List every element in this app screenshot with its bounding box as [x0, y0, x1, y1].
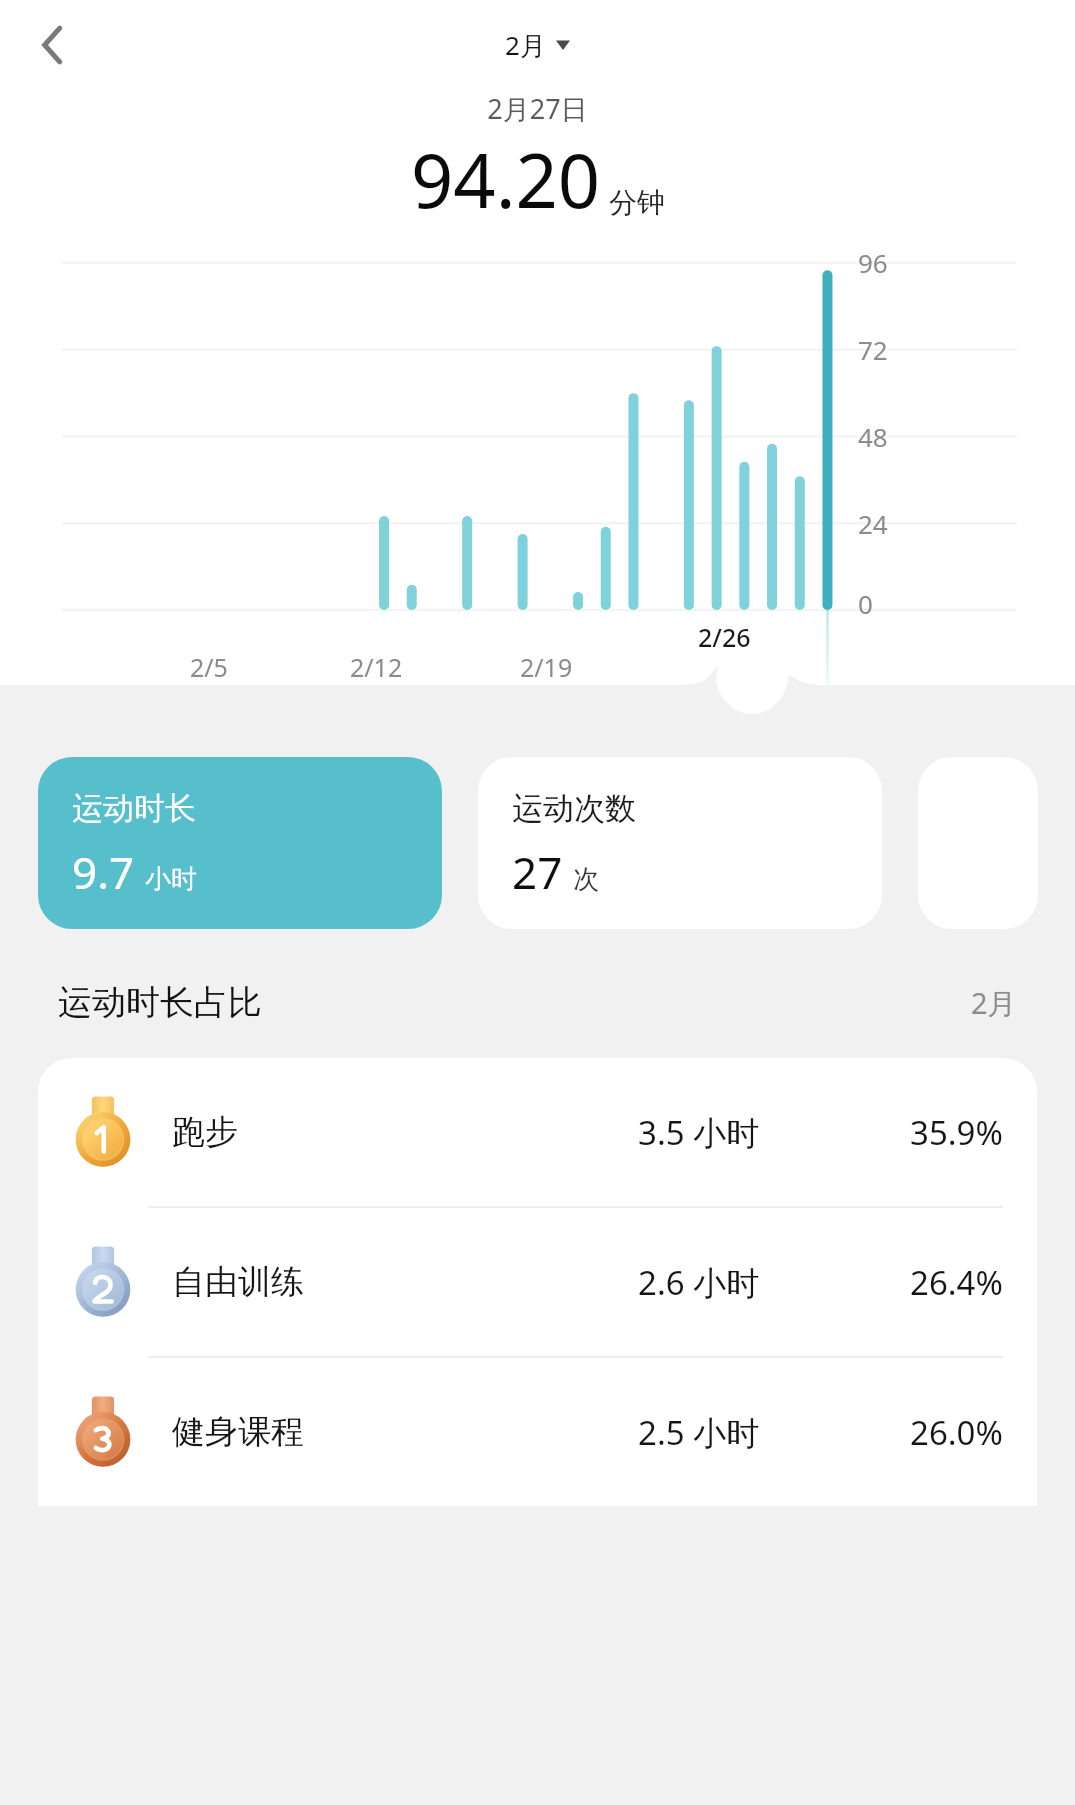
- button[interactable]: 健身课程: [38, 1358, 1037, 1506]
- staticText: 运动时长占比: [58, 981, 262, 1024]
- staticText: 96: [858, 245, 888, 280]
- staticText: 次: [573, 863, 599, 896]
- button[interactable]: Back: [22, 14, 84, 76]
- staticText: 运动时长: [72, 789, 196, 828]
- button[interactable]: 跑步: [38, 1058, 1037, 1206]
- staticText: 94.20: [411, 129, 601, 230]
- staticText: 2.5 小时: [638, 1410, 760, 1455]
- staticText: 35.9%: [910, 1110, 1003, 1155]
- staticText: 跑步: [172, 1111, 238, 1153]
- staticText: 26.0%: [910, 1410, 1003, 1455]
- staticText: 2.6 小时: [638, 1260, 760, 1305]
- staticText: 运动次数: [512, 789, 636, 828]
- staticText: 72: [858, 332, 888, 367]
- staticText: 分钟: [609, 185, 665, 220]
- staticText: 健身课程: [172, 1411, 304, 1453]
- staticText: 2/5: [190, 650, 228, 684]
- button[interactable]: 自由训练: [38, 1208, 1037, 1356]
- staticText: 2/12: [350, 650, 403, 684]
- staticText: 0: [858, 586, 873, 621]
- staticText: 小时: [145, 863, 197, 896]
- button[interactable]: 2月: [499, 21, 576, 69]
- staticText: 3.5 小时: [638, 1110, 760, 1155]
- staticText: 2月: [505, 27, 546, 63]
- staticText: 48: [858, 419, 888, 454]
- staticText: 26.4%: [910, 1260, 1003, 1305]
- staticText: 2/19: [520, 650, 573, 684]
- staticText: 2月27日: [0, 90, 1075, 127]
- button[interactable]: 运动时长: [38, 757, 442, 929]
- staticText: 9.7: [72, 842, 135, 902]
- staticText: 27: [512, 842, 563, 902]
- staticText: 2/26: [698, 620, 751, 654]
- button[interactable]: 运动次数: [478, 757, 882, 929]
- staticText: 自由训练: [172, 1261, 304, 1303]
- staticText: 2月: [971, 983, 1017, 1023]
- staticText: 24: [858, 506, 888, 541]
